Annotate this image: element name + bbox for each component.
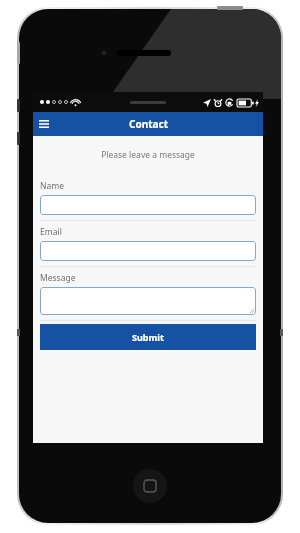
button[interactable]: Open navigation menu (33, 112, 55, 136)
staticText: Message (40, 272, 76, 284)
button[interactable]: Email input field (40, 241, 256, 261)
staticText: Contact (129, 117, 168, 131)
button[interactable]: Name input field (40, 195, 256, 215)
staticText: Name (40, 180, 64, 192)
staticText: Submit (132, 331, 164, 343)
other: Home (133, 469, 167, 503)
staticText: Please leave a message (33, 149, 263, 161)
button[interactable]: Submit (40, 324, 256, 350)
button[interactable]: Message input field (40, 287, 256, 315)
staticText: Email (40, 226, 62, 238)
